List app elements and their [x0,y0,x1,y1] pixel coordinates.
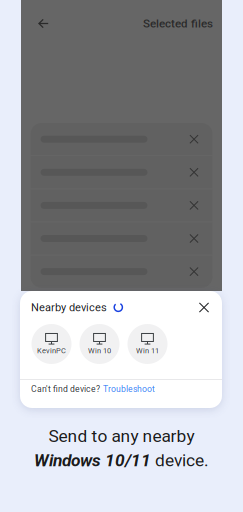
button[interactable]: Close [196,299,212,315]
staticText: Troubleshoot [103,384,155,394]
button[interactable]: Win 10 [79,324,120,364]
staticText: Can't find device? [31,384,100,394]
staticText: Send to any nearby [48,426,194,446]
button[interactable]: Troubleshoot [103,384,155,394]
button[interactable]: Back [33,13,54,33]
staticText: Win 10 [88,346,111,355]
staticText: Windows 10/11 device. [34,450,209,470]
staticText: KevinPC [37,346,66,355]
staticText: Nearby devices [31,301,107,314]
staticText: Win 11 [136,346,159,355]
staticText: Selected files [143,17,213,30]
button[interactable]: KevinPC [31,324,72,364]
button[interactable]: Win 11 [127,324,168,364]
